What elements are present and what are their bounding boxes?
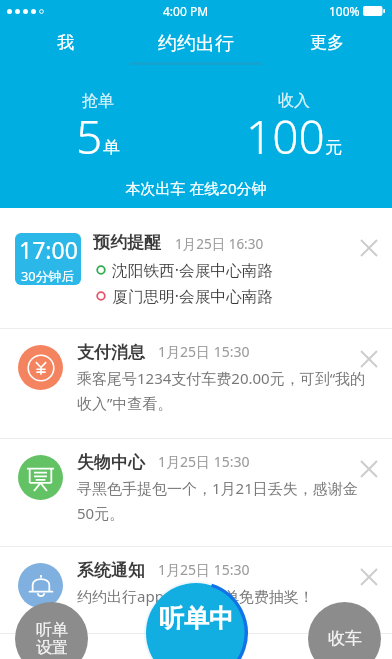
staticText: 本次出车 在线20分钟: [0, 178, 392, 198]
staticText: 5: [76, 105, 103, 168]
button[interactable]: 支付消息: [0, 329, 392, 438]
button[interactable]: 系统通知: [0, 547, 392, 633]
staticText: 1月25日 15:30: [158, 560, 250, 579]
staticText: 失物中心: [77, 452, 145, 473]
button[interactable]: 听单中: [144, 581, 248, 659]
staticText: 更多: [310, 32, 344, 53]
staticText: 听单 设置: [36, 620, 68, 658]
staticText: 系统通知: [77, 560, 145, 581]
staticText: 乘客尾号1234支付车费20.00元，可到“我的收入”中查看。: [77, 368, 366, 413]
staticText: 收车: [328, 628, 362, 649]
button[interactable]: 听单 设置: [15, 602, 88, 659]
staticText: 100: [246, 105, 325, 168]
button[interactable]: Dismiss: [354, 454, 384, 484]
staticText: 我: [57, 32, 74, 53]
staticText: 100%: [329, 3, 360, 19]
button[interactable]: 我: [0, 32, 130, 53]
button[interactable]: Dismiss: [354, 562, 384, 592]
staticText: 元: [325, 137, 342, 158]
staticText: 4:00 PM: [163, 3, 209, 19]
button[interactable]: 更多: [261, 32, 392, 53]
button[interactable]: Dismiss: [354, 233, 384, 263]
staticText: 预约提醒: [93, 232, 161, 253]
button[interactable]: 失物中心: [0, 439, 392, 546]
button[interactable]: 约约出行: [130, 32, 261, 65]
staticText: 厦门思明·会展中心南路: [112, 285, 274, 306]
staticText: 支付消息: [77, 342, 145, 363]
staticText: 沈阳铁西·会展中心南路: [112, 259, 274, 280]
staticText: 1月25日 15:30: [158, 452, 250, 471]
staticText: 17:00: [19, 234, 78, 265]
button[interactable]: Dismiss: [354, 344, 384, 374]
staticText: 1月25日 15:30: [158, 342, 250, 361]
staticText: 听单中: [159, 603, 234, 634]
staticText: 收入: [278, 91, 310, 111]
button[interactable]: 收车: [308, 602, 381, 659]
button[interactable]: 17:00: [0, 208, 392, 328]
staticText: 单: [103, 137, 120, 158]
staticText: 1月25日 16:30: [175, 235, 264, 253]
staticText: 寻黑色手提包一个，1月21日丢失，感谢金50元。: [77, 478, 366, 523]
staticText: 抢单: [82, 91, 114, 111]
staticText: 约约出行: [158, 32, 234, 56]
staticText: 约约出行app上线，首单免费抽奖！: [77, 586, 314, 606]
staticText: 30分钟后: [21, 267, 75, 284]
